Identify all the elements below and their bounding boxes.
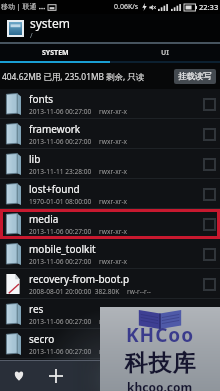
button[interactable]: secro bbox=[0, 329, 220, 359]
button[interactable]: Add bbox=[37, 360, 74, 391]
staticText: recovery-from-boot.p bbox=[29, 272, 130, 286]
button[interactable]: Select framework bbox=[203, 128, 216, 141]
staticText: 2013-11-06 00:27:00 bbox=[29, 317, 92, 326]
staticText: mobile_toolkit bbox=[29, 242, 96, 256]
staticText: 2008-08-01 20:00:00 382.80K bbox=[29, 287, 120, 296]
button[interactable]: mobile_toolkit bbox=[0, 239, 220, 269]
button[interactable]: lost+found bbox=[0, 179, 220, 209]
staticText: 2013-11-06 00:27:00 bbox=[29, 257, 92, 266]
button[interactable]: lib bbox=[0, 149, 220, 179]
button[interactable]: Favorites bbox=[0, 360, 37, 391]
button[interactable]: recovery-from-boot.p bbox=[0, 269, 220, 299]
staticText: secro bbox=[29, 332, 55, 346]
staticText: lost+found bbox=[29, 182, 80, 196]
staticText: rwxr-xr-x bbox=[99, 227, 128, 236]
button[interactable]: Select recovery-from-boot.p bbox=[203, 278, 216, 291]
button[interactable]: Select mobile_toolkit bbox=[203, 248, 216, 261]
staticText: rw-r--r-- bbox=[127, 287, 151, 296]
staticText: lib bbox=[29, 152, 41, 166]
button[interactable]: fonts bbox=[0, 89, 220, 119]
staticText: system bbox=[30, 15, 70, 31]
button[interactable]: Select lost+found bbox=[203, 188, 216, 201]
staticText: rwxr-xr-x bbox=[99, 257, 128, 266]
staticText: 2013-11-06 00:27:00 bbox=[29, 227, 92, 236]
staticText: media bbox=[29, 212, 59, 226]
staticText: rwxr-xr-x bbox=[99, 197, 128, 206]
button[interactable]: media bbox=[0, 209, 220, 239]
button[interactable]: 挂载读写 bbox=[174, 69, 216, 84]
staticText: KHCoo bbox=[126, 322, 195, 348]
staticText: rwxr-xr-x bbox=[99, 317, 128, 326]
staticText: / bbox=[30, 31, 33, 41]
staticText: 挂载读写 bbox=[178, 71, 212, 82]
staticText: 移动 | 联通 bbox=[1, 2, 37, 12]
staticText: rwxr-xr-x bbox=[99, 137, 128, 146]
button[interactable]: UI bbox=[110, 44, 220, 61]
button[interactable]: Select lib bbox=[203, 158, 216, 171]
button[interactable]: SYSTEM bbox=[0, 44, 110, 61]
button[interactable]: framework bbox=[0, 119, 220, 149]
staticText: khcoo.com bbox=[127, 379, 193, 391]
button[interactable]: Select fonts bbox=[203, 98, 216, 111]
staticText: 404.62MB 已用, 235.01MB 剩余, 只读 bbox=[2, 71, 145, 82]
button[interactable]: system bbox=[0, 14, 220, 42]
button[interactable]: Select media bbox=[203, 218, 216, 231]
staticText: rwxr-xr-x bbox=[99, 347, 128, 356]
staticText: res bbox=[29, 302, 44, 316]
staticText: 2013-11-06 00:27:00 bbox=[29, 347, 92, 356]
button[interactable]: res bbox=[0, 299, 220, 329]
staticText: 科技库 bbox=[124, 349, 196, 378]
staticText: fonts bbox=[29, 92, 54, 106]
staticText: rwxr-xr-x bbox=[99, 107, 128, 116]
staticText: 2013-11-11 23:28:00 bbox=[29, 167, 92, 176]
staticText: 0.06K/s bbox=[114, 2, 139, 12]
staticText: 1970-01-01 08:00:00 bbox=[29, 197, 92, 206]
staticText: framework bbox=[29, 122, 81, 136]
staticText: 2013-11-06 00:27:00 bbox=[29, 137, 92, 146]
staticText: UI bbox=[161, 48, 170, 58]
staticText: SYSTEM bbox=[42, 48, 69, 58]
staticText: 2013-11-06 00:27:00 bbox=[29, 107, 92, 116]
staticText: 22:33 bbox=[199, 2, 219, 12]
staticText: rwxr-xr-x bbox=[99, 167, 128, 176]
